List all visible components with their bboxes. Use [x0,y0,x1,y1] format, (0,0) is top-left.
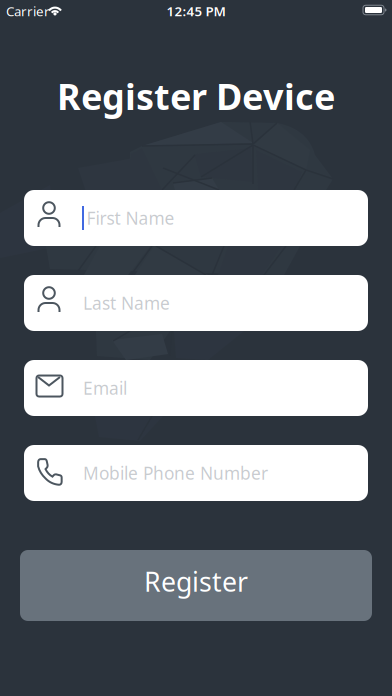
button[interactable]: First Name [24,190,368,246]
staticText: Mobile Phone Number [83,461,268,484]
staticText: Register [144,564,248,599]
staticText: 12:45 PM [166,2,225,20]
staticText: Carrier [6,2,50,20]
button[interactable]: Last Name [24,275,368,331]
staticText: First Name [86,206,174,229]
button[interactable]: Email [24,360,368,416]
staticText: Last Name [83,291,170,314]
staticText: Register Device [57,72,335,120]
staticText: Email [83,376,127,399]
button[interactable]: Mobile Phone Number [24,445,368,501]
button[interactable]: Register [20,550,372,621]
